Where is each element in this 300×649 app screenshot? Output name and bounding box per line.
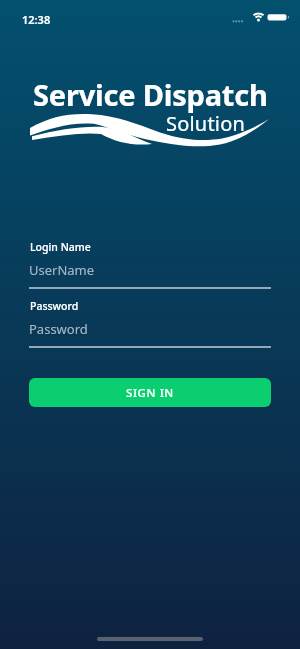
button[interactable]: Login Name	[29, 240, 271, 289]
staticText: Password	[30, 299, 79, 313]
staticText: SIGN IN	[126, 385, 174, 401]
staticText: Solution	[166, 110, 246, 137]
staticText: Login Name	[30, 240, 91, 254]
staticText: UserName	[29, 261, 95, 279]
staticText: 12:38	[22, 12, 51, 27]
staticText: Password	[29, 320, 88, 338]
button[interactable]: Password	[29, 299, 271, 348]
button[interactable]: SIGN IN	[29, 378, 271, 407]
staticText: Service Dispatch	[33, 75, 268, 114]
